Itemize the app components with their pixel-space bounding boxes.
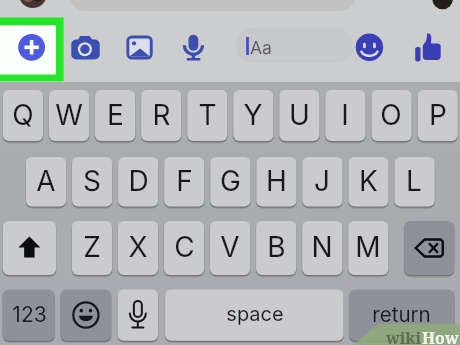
staticText: Z <box>83 230 101 264</box>
staticText: K <box>359 164 378 198</box>
staticText: R <box>152 98 171 132</box>
button[interactable]: space <box>165 289 344 340</box>
button[interactable]: Voice message <box>172 22 216 72</box>
staticText: wiki <box>386 327 422 345</box>
staticText: M <box>355 230 381 264</box>
button[interactable]: Like <box>406 26 448 64</box>
staticText: P <box>429 98 447 132</box>
button[interactable]: S <box>72 157 112 207</box>
staticText: J <box>314 164 330 198</box>
button[interactable]: Backspace <box>404 221 454 275</box>
button[interactable]: Camera <box>66 22 110 72</box>
staticText: D <box>128 164 149 198</box>
staticText: How <box>422 327 459 345</box>
staticText: N <box>311 230 333 264</box>
button[interactable]: Z <box>72 221 112 275</box>
staticText: C <box>174 230 195 264</box>
staticText: B <box>267 230 286 264</box>
button[interactable]: O <box>371 90 411 141</box>
staticText: return <box>372 302 431 327</box>
staticText: W <box>55 98 83 132</box>
button[interactable]: P <box>418 90 458 141</box>
staticText: X <box>128 230 148 264</box>
staticText: T <box>198 98 217 132</box>
button[interactable]: F <box>164 157 204 207</box>
staticText: S <box>83 164 101 198</box>
button[interactable]: Q <box>3 90 43 141</box>
staticText: 123 <box>12 302 47 327</box>
button[interactable]: G <box>210 157 250 207</box>
button[interactable]: return <box>349 289 454 340</box>
button[interactable]: K <box>348 157 388 207</box>
button[interactable]: Emoji <box>61 289 111 340</box>
staticText: E <box>107 98 124 132</box>
staticText: Y <box>243 98 263 132</box>
staticText: U <box>289 98 310 132</box>
staticText: I <box>341 98 349 132</box>
button[interactable]: 123 <box>3 289 55 340</box>
staticText: F <box>176 164 193 198</box>
staticText: A <box>36 164 56 198</box>
staticText: L <box>406 164 422 198</box>
button[interactable]: W <box>49 90 89 141</box>
button[interactable]: R <box>141 90 181 141</box>
staticText: Aa <box>250 37 272 58</box>
button[interactable]: Stickers <box>352 26 390 64</box>
button[interactable]: D <box>118 157 158 207</box>
button[interactable]: E <box>95 90 135 141</box>
button[interactable]: X <box>118 221 158 275</box>
button[interactable]: T <box>187 90 227 141</box>
button[interactable]: C <box>164 221 204 275</box>
button[interactable]: L <box>394 157 434 207</box>
staticText: V <box>220 230 240 264</box>
button[interactable]: H <box>256 157 296 207</box>
button[interactable]: B <box>256 221 296 275</box>
staticText: H <box>266 164 287 198</box>
button[interactable]: Message input <box>236 26 354 64</box>
button[interactable]: V <box>210 221 250 275</box>
button[interactable]: Shift <box>3 221 56 275</box>
button[interactable]: Photos <box>118 22 162 72</box>
button[interactable]: M <box>348 221 388 275</box>
button[interactable]: Y <box>233 90 273 141</box>
button[interactable]: A <box>26 157 66 207</box>
button[interactable]: J <box>302 157 342 207</box>
staticText: space <box>226 302 284 326</box>
button[interactable]: I <box>325 90 365 141</box>
staticText: Q <box>12 98 34 132</box>
staticText: G <box>220 164 241 198</box>
button[interactable]: Add attachment <box>0 18 64 82</box>
staticText: O <box>380 98 402 132</box>
button[interactable]: N <box>302 221 342 275</box>
button[interactable]: Dictation <box>118 289 159 340</box>
button[interactable]: U <box>279 90 319 141</box>
